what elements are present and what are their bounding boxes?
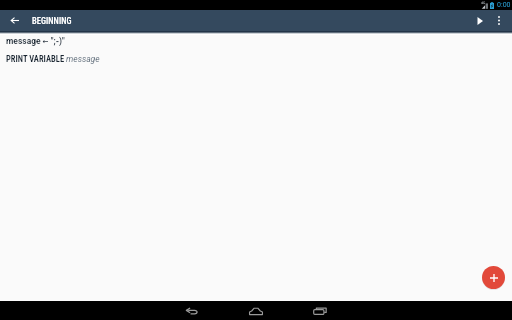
- button[interactable]: Recent apps: [288, 301, 352, 320]
- staticText: message ← ";-)": [6, 36, 65, 46]
- button[interactable]: Add: [482, 266, 505, 289]
- button[interactable]: PRINT VARIABLE message: [0, 50, 512, 67]
- button[interactable]: Back: [160, 301, 224, 320]
- button[interactable]: Home: [224, 301, 288, 320]
- button[interactable]: Run: [471, 10, 488, 31]
- button[interactable]: Back: [4, 10, 25, 31]
- button[interactable]: More options: [488, 10, 509, 31]
- staticText: 0:00: [497, 1, 511, 9]
- staticText: PRINT VARIABLE message: [6, 54, 100, 64]
- staticText: BEGINNING: [32, 16, 72, 26]
- button[interactable]: message ← ";-)": [0, 33, 512, 49]
